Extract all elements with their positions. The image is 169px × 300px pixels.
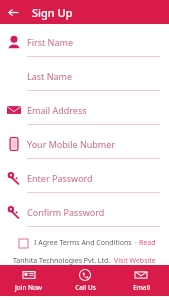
staticText: Sign Up: [32, 5, 73, 20]
staticText: Email: [133, 283, 150, 292]
staticText: Visit Website: [114, 256, 156, 265]
button[interactable]: Call Us: [57, 265, 113, 296]
staticText: Confirm Password: [27, 206, 105, 218]
button[interactable]: Confirm Password: [0, 198, 169, 226]
staticText: Join Now: [15, 283, 42, 292]
staticText: ·: [135, 238, 137, 248]
staticText: Read: [139, 238, 156, 248]
button[interactable]: Email Address: [0, 96, 169, 124]
staticText: Your Mobile Nubmer: [27, 138, 116, 150]
staticText: Enter Password: [27, 172, 93, 184]
staticText: Tanhita Technologies Pvt. Ltd.: [13, 256, 111, 265]
button[interactable]: Join Now: [0, 265, 57, 296]
staticText: First Name: [27, 36, 73, 48]
button[interactable]: Back: [4, 3, 22, 21]
staticText: Call Us: [75, 283, 96, 292]
staticText: Email Address: [27, 104, 87, 116]
button[interactable]: Last Name: [0, 62, 169, 90]
button[interactable]: Your Mobile Nubmer: [0, 130, 169, 158]
button[interactable]: Enter Password: [0, 164, 169, 192]
button[interactable]: Read: [139, 238, 156, 248]
button[interactable]: I Agree Terms And Conditions: [19, 235, 169, 251]
button[interactable]: Visit Website: [114, 256, 156, 265]
staticText: I Agree Terms And Conditions: [34, 238, 132, 248]
button[interactable]: First Name: [0, 28, 169, 56]
staticText: Last Name: [27, 70, 73, 82]
button[interactable]: Email: [113, 265, 169, 296]
